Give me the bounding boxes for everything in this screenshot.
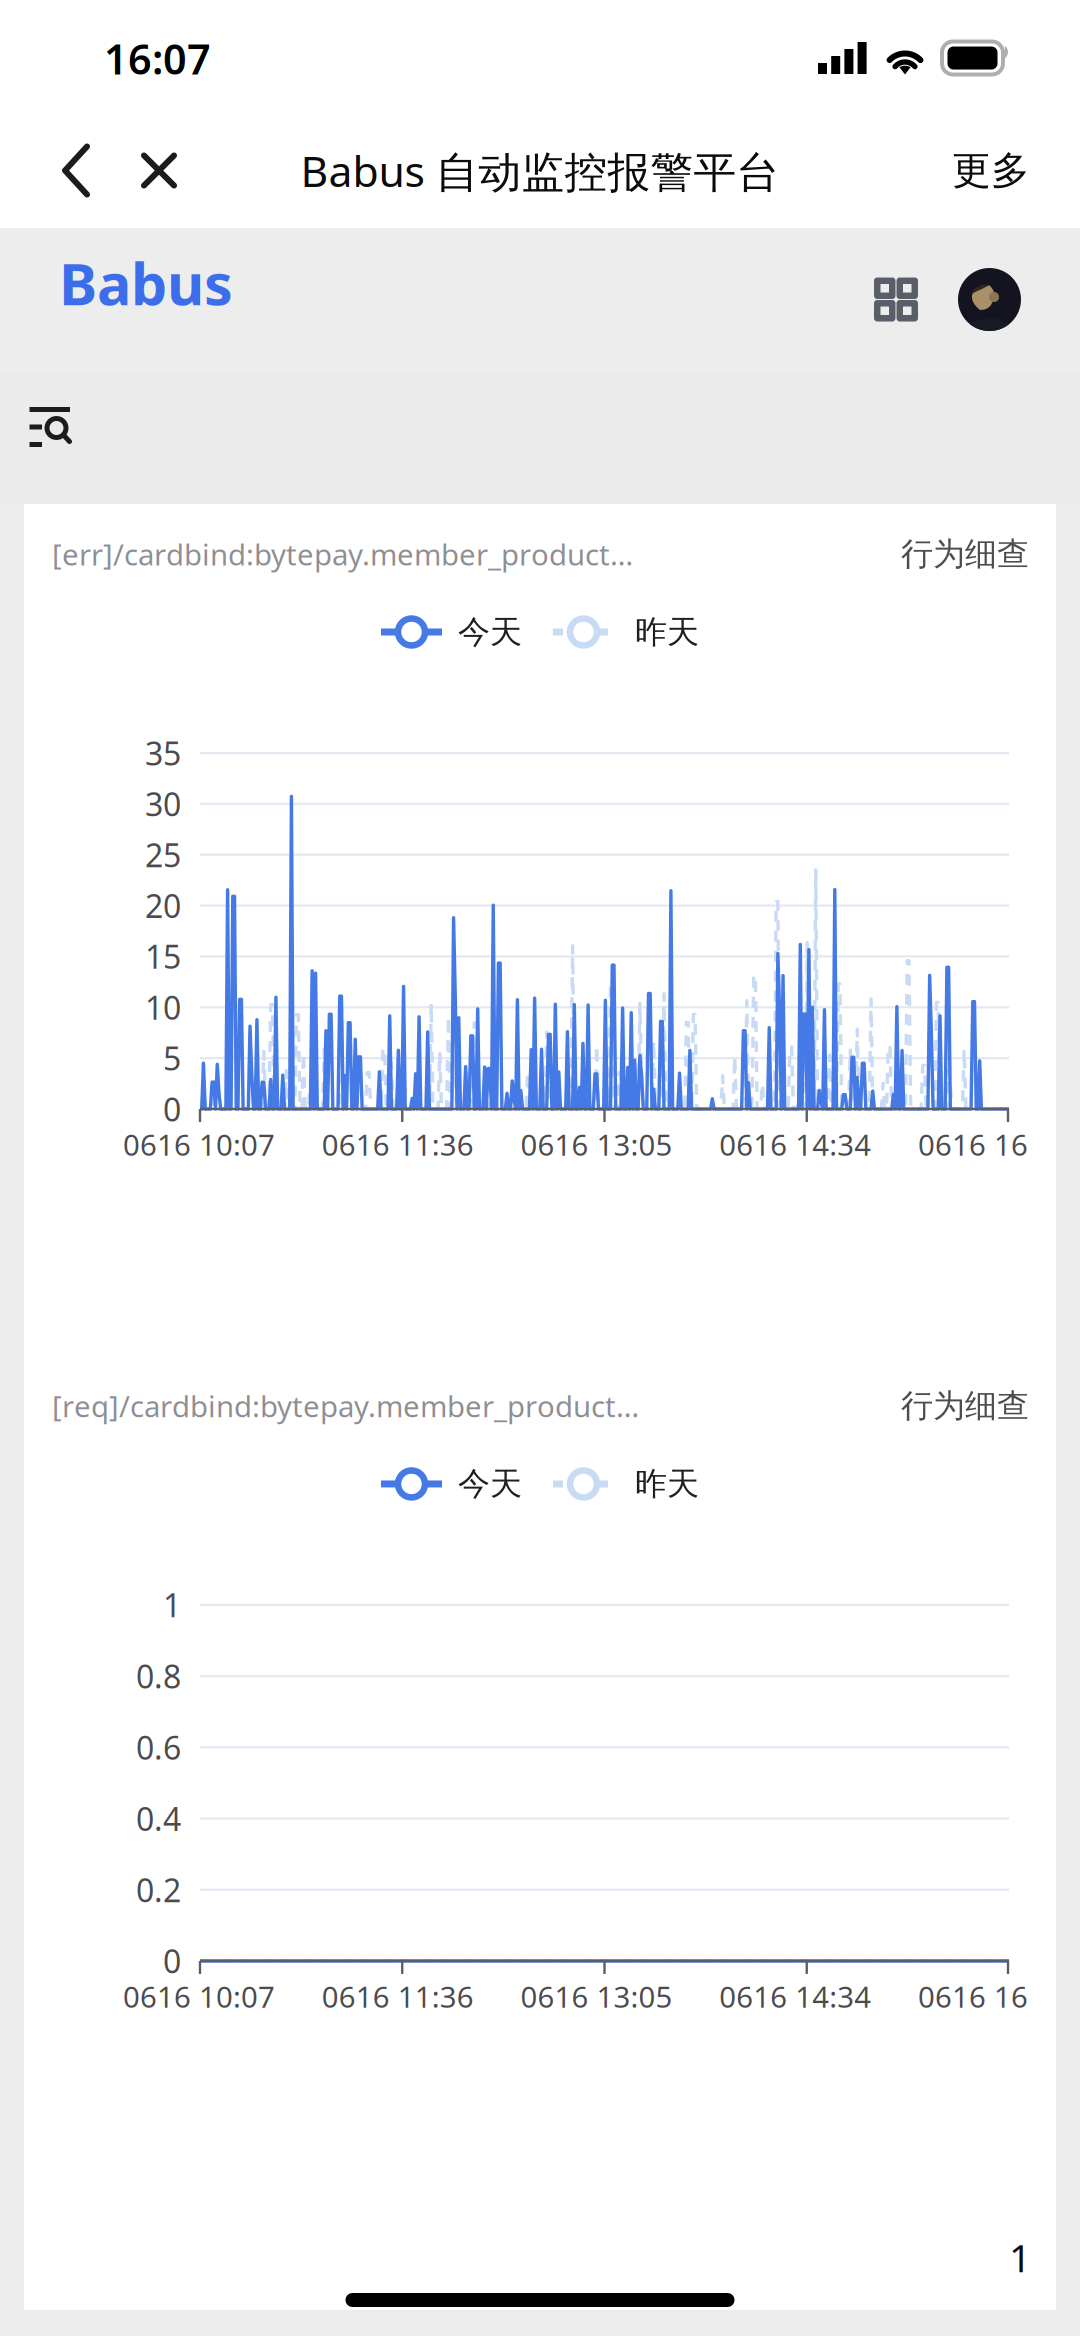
- staticText: 16:07: [104, 31, 211, 86]
- staticText: 0: [163, 1940, 181, 1982]
- staticText: 0616 14:34: [719, 1125, 871, 1164]
- staticText: Babus 自动监控报警平台: [300, 142, 779, 199]
- staticText: 1: [1009, 2232, 1031, 2283]
- staticText: 0616 11:36: [322, 1125, 474, 1164]
- staticText: 0616 13:05: [520, 1977, 672, 2016]
- button[interactable]: Close: [114, 123, 204, 217]
- staticText: 0: [163, 1088, 181, 1130]
- button[interactable]: 行为细查: [901, 1386, 1029, 1426]
- staticText: 20: [145, 884, 181, 927]
- staticText: 0616 11:36: [322, 1977, 474, 2016]
- staticText: 0.2: [136, 1868, 181, 1911]
- staticText: 0.4: [136, 1797, 181, 1840]
- button[interactable]: Apps: [856, 257, 936, 341]
- staticText: 15: [145, 935, 181, 978]
- staticText: 0616 16: [918, 1977, 1028, 2016]
- staticText: 更多: [952, 147, 1030, 194]
- staticText: 行为细查: [901, 534, 1029, 574]
- button[interactable]: Profile: [958, 268, 1021, 331]
- staticText: 25: [145, 833, 181, 876]
- staticText: 今天: [458, 1464, 522, 1504]
- button[interactable]: 行为细查: [901, 534, 1029, 574]
- staticText: 0616 10:07: [123, 1125, 275, 1164]
- staticText: 昨天: [635, 612, 699, 652]
- button[interactable]: Filter: [0, 371, 97, 504]
- staticText: 行为细查: [901, 1386, 1029, 1426]
- staticText: 1: [163, 1584, 181, 1626]
- staticText: 5: [163, 1037, 181, 1079]
- staticText: 0616 10:07: [123, 1977, 275, 2016]
- staticText: [req]/cardbind:bytepay.member_product…: [52, 1386, 639, 1425]
- staticText: 0.6: [136, 1726, 181, 1769]
- button[interactable]: Back: [0, 123, 114, 217]
- button[interactable]: 更多: [928, 123, 1080, 218]
- staticText: 0616 16: [918, 1125, 1028, 1164]
- staticText: [err]/cardbind:bytepay.member_product…: [52, 534, 633, 573]
- staticText: Babus: [59, 245, 233, 321]
- staticText: 10: [145, 986, 181, 1028]
- staticText: 今天: [458, 612, 522, 652]
- staticText: 30: [145, 783, 181, 825]
- staticText: 0616 14:34: [719, 1977, 871, 2016]
- staticText: 35: [145, 732, 181, 774]
- staticText: 0616 13:05: [520, 1125, 672, 1164]
- staticText: 昨天: [635, 1464, 699, 1504]
- staticText: 0.8: [136, 1655, 181, 1697]
